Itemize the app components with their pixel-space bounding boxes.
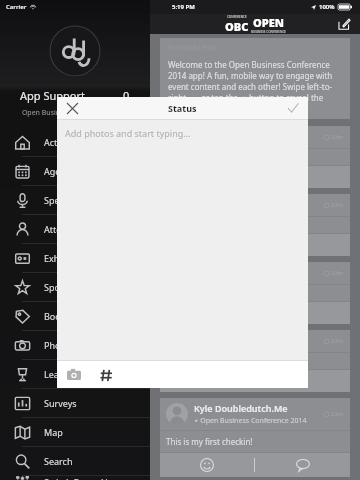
button[interactable]: Speakers xyxy=(0,186,150,214)
staticText: Status xyxy=(168,102,197,114)
button[interactable]: Comment xyxy=(255,453,350,477)
button[interactable]: Kyle Doubledutch.Me xyxy=(160,398,350,477)
button[interactable]: Map xyxy=(0,418,150,446)
staticText: 0 xyxy=(123,88,130,103)
staticText: 22m xyxy=(331,269,344,277)
button[interactable]: Add hashtag xyxy=(95,364,117,386)
button[interactable]: Sponsors xyxy=(0,273,150,301)
staticText: Photos xyxy=(44,339,74,351)
staticText: Kyle Doubledutch.Me xyxy=(194,402,288,414)
staticText: Exhibitors xyxy=(44,252,87,264)
staticText: This is my first checkin! xyxy=(166,436,253,447)
staticText: 22m xyxy=(331,410,344,418)
button[interactable]: Activity xyxy=(0,128,150,156)
button[interactable]: 22m xyxy=(160,194,350,256)
button[interactable]: Close xyxy=(63,99,81,117)
staticText: Add photos and start typing... xyxy=(65,127,191,139)
button[interactable]: 22m xyxy=(160,262,350,324)
button[interactable]: Attendees xyxy=(0,215,150,243)
staticText: Welcome to the Open Business Conference … xyxy=(168,59,342,114)
button[interactable]: 22m xyxy=(160,330,350,392)
button[interactable]: Switch Event / Logout xyxy=(0,476,150,480)
staticText: Leaderboard xyxy=(44,368,99,380)
staticText: 100% xyxy=(319,3,335,11)
staticText: Speakers xyxy=(44,194,83,206)
staticText: 5:19 PM xyxy=(172,3,195,11)
staticText: Switch Event / Logout xyxy=(44,476,136,480)
button[interactable]: Search xyxy=(0,447,150,475)
button[interactable]: Compose post xyxy=(336,16,352,32)
staticText: Sponsors xyxy=(44,281,84,293)
button[interactable]: Photos xyxy=(0,331,150,359)
staticText: 22m xyxy=(331,337,344,345)
staticText: 22m xyxy=(331,133,344,141)
staticText: Map xyxy=(44,426,63,438)
button[interactable]: Exhibitors xyxy=(0,244,150,272)
staticText: Bookmarks xyxy=(44,310,92,322)
staticText: Agenda xyxy=(44,165,77,177)
button[interactable]: Surveys xyxy=(0,389,150,417)
staticText: 22m xyxy=(331,201,344,209)
button[interactable]: Promoted Post xyxy=(168,43,342,114)
staticText: OBC xyxy=(225,19,249,34)
staticText: ∙ Open Business Conference 2014 xyxy=(194,416,307,426)
button[interactable]: Add photo xyxy=(63,364,85,386)
button[interactable]: Post xyxy=(284,99,302,117)
staticText: Activity xyxy=(44,136,75,148)
button[interactable]: Bookmarks xyxy=(0,302,150,330)
button[interactable]: Agenda xyxy=(0,157,150,185)
staticText: OPEN xyxy=(253,15,284,30)
staticText: Search xyxy=(44,455,73,467)
staticText: Open Business Conference 2014 xyxy=(0,108,150,118)
staticText: BUSINESS CONFERENCE xyxy=(251,30,286,34)
button[interactable]: Leaderboard xyxy=(0,360,150,388)
staticText: Carrier xyxy=(6,3,27,11)
staticText: App Support xyxy=(20,88,85,103)
staticText: Surveys xyxy=(44,397,77,409)
staticText: CONFERENCE xyxy=(227,15,247,19)
button[interactable]: Like xyxy=(160,453,254,477)
staticText: Attendees xyxy=(44,223,87,235)
button[interactable]: 22m xyxy=(160,126,350,188)
